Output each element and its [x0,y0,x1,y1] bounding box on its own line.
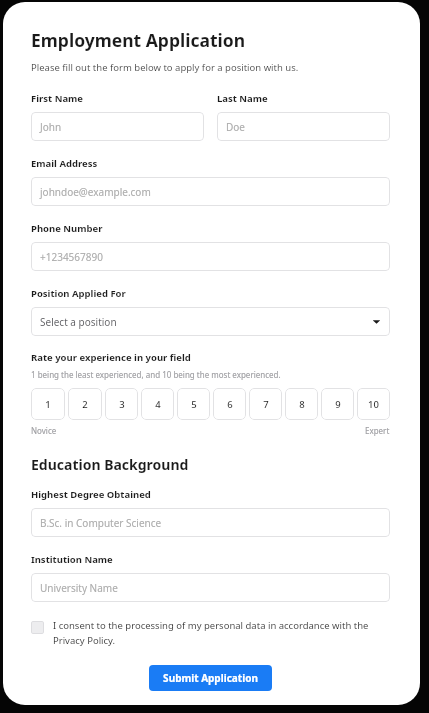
button[interactable]: Select a position [31,307,390,336]
staticText: 1 being the least experienced, and 10 be… [31,369,281,380]
button[interactable]: 10 [357,388,390,420]
staticText: Last Name [217,92,268,105]
button[interactable]: Submit Application [149,665,272,691]
staticText: Institution Name [31,553,113,566]
staticText: 7 [263,398,269,411]
staticText: Expert [365,425,390,436]
button[interactable]: 5 [177,388,210,420]
staticText: Doe [226,120,381,134]
staticText: B.Sc. in Computer Science [40,516,381,530]
staticText: I consent to the processing of my person… [53,619,390,647]
staticText: University Name [40,581,381,595]
button[interactable]: University Name [31,573,390,602]
staticText: Rate your experience in your field [31,351,191,364]
staticText: Highest Degree Obtained [31,488,151,501]
button[interactable]: B.Sc. in Computer Science [31,508,390,537]
staticText: Please fill out the form below to apply … [31,61,299,74]
button[interactable]: 7 [249,388,282,420]
button[interactable]: 2 [68,388,102,420]
staticText: 4 [155,398,161,411]
button[interactable]: Consent checkbox [31,619,390,647]
staticText: Submit Application [163,671,258,685]
staticText: 10 [368,398,379,411]
button[interactable]: Doe [217,112,390,141]
button[interactable]: johndoe@example.com [31,177,390,206]
button[interactable]: 6 [213,388,246,420]
staticText: Education Background [31,455,189,474]
staticText: Employment Application [31,28,246,52]
staticText: Position Applied For [31,287,126,300]
staticText: 1 [45,398,51,411]
staticText: 6 [227,398,233,411]
button[interactable]: 4 [141,388,174,420]
staticText: Novice [31,425,57,436]
staticText: Select a position [40,315,372,329]
staticText: 9 [335,398,341,411]
button[interactable]: 1 [31,388,65,420]
button[interactable]: 9 [321,388,354,420]
staticText: 5 [191,398,197,411]
button[interactable]: +1234567890 [31,242,390,271]
button[interactable]: 8 [285,388,318,420]
staticText: First Name [31,92,84,105]
button[interactable]: John [31,112,204,141]
staticText: Email Address [31,157,98,170]
staticText: 2 [82,398,88,411]
other: Consent checkbox [31,621,44,634]
staticText: Phone Number [31,222,103,235]
staticText: 8 [299,398,305,411]
staticText: John [40,120,195,134]
button[interactable]: 3 [105,388,138,420]
staticText: 3 [119,398,125,411]
staticText: +1234567890 [40,250,381,264]
staticText: johndoe@example.com [40,185,381,199]
